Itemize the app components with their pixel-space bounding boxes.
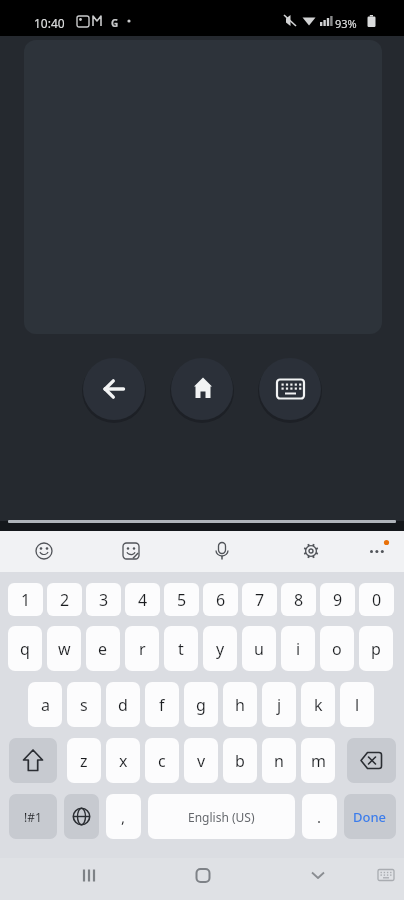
button[interactable]	[73, 860, 105, 892]
button[interactable]: English (US)	[148, 794, 295, 839]
button[interactable]	[347, 738, 396, 783]
staticText: 8	[294, 589, 304, 611]
button[interactable]	[293, 533, 329, 569]
staticText: v	[197, 750, 206, 772]
staticText: z	[80, 750, 88, 772]
button[interactable]: r	[125, 626, 159, 671]
staticText: 0	[372, 589, 382, 611]
button[interactable]: z	[67, 738, 101, 783]
button[interactable]: w	[47, 626, 81, 671]
button[interactable]: b	[223, 738, 257, 783]
button[interactable]	[83, 358, 145, 420]
button[interactable]: 2	[47, 583, 82, 616]
staticText: 3	[99, 589, 109, 611]
staticText: w	[58, 638, 71, 660]
staticText: b	[235, 750, 245, 772]
staticText: 9	[333, 589, 343, 611]
staticText: g	[196, 694, 206, 716]
button[interactable]	[26, 533, 62, 569]
button[interactable]: t	[164, 626, 198, 671]
staticText: 93%	[335, 16, 357, 31]
staticText: e	[98, 638, 108, 660]
button[interactable]: 3	[86, 583, 121, 616]
button[interactable]: c	[145, 738, 179, 783]
staticText: 10:40	[34, 15, 65, 31]
button[interactable]: x	[106, 738, 140, 783]
button[interactable]: l	[340, 682, 374, 727]
button[interactable]: d	[106, 682, 140, 727]
staticText: 7	[255, 589, 265, 611]
button[interactable]	[64, 794, 99, 839]
staticText: G	[111, 16, 119, 30]
button[interactable]: e	[86, 626, 120, 671]
staticText: p	[371, 638, 381, 660]
button[interactable]: y	[203, 626, 237, 671]
button[interactable]: j	[262, 682, 296, 727]
button[interactable]: k	[301, 682, 335, 727]
button[interactable]	[370, 860, 402, 892]
staticText: n	[274, 750, 284, 772]
staticText: h	[235, 694, 245, 716]
button[interactable]: .	[302, 794, 337, 839]
staticText: q	[20, 638, 30, 660]
staticText: j	[277, 694, 282, 716]
staticText: ,	[121, 807, 126, 827]
staticText: l	[355, 694, 360, 716]
staticText: t	[178, 638, 184, 660]
button[interactable]: ,	[106, 794, 141, 839]
staticText: Done	[353, 808, 387, 826]
button[interactable]: a	[28, 682, 62, 727]
button[interactable]: f	[145, 682, 179, 727]
staticText: 4	[138, 589, 148, 611]
staticText: a	[41, 694, 50, 716]
button[interactable]: 8	[281, 583, 316, 616]
button[interactable]	[171, 358, 233, 420]
button[interactable]: 7	[242, 583, 277, 616]
button[interactable]: n	[262, 738, 296, 783]
staticText: d	[118, 694, 128, 716]
staticText: 5	[177, 589, 187, 611]
staticText: !#1	[24, 809, 42, 825]
button[interactable]: s	[67, 682, 101, 727]
button[interactable]	[187, 860, 219, 892]
button[interactable]: p	[359, 626, 393, 671]
button[interactable]: o	[320, 626, 354, 671]
button[interactable]	[259, 358, 321, 420]
button[interactable]: 5	[164, 583, 199, 616]
button[interactable]: m	[301, 738, 335, 783]
button[interactable]	[302, 860, 334, 892]
button[interactable]: q	[8, 626, 42, 671]
button[interactable]	[113, 533, 149, 569]
staticText: 2	[60, 589, 70, 611]
button[interactable]: u	[242, 626, 276, 671]
staticText: 1	[21, 589, 31, 611]
staticText: r	[139, 638, 146, 660]
button[interactable]: g	[184, 682, 218, 727]
staticText: English (US)	[188, 809, 255, 825]
button[interactable]	[9, 738, 57, 783]
staticText: u	[254, 638, 264, 660]
button[interactable]	[359, 533, 395, 569]
button[interactable]: !#1	[9, 794, 57, 839]
button[interactable]: i	[281, 626, 315, 671]
button[interactable]: v	[184, 738, 218, 783]
button[interactable]: 1	[8, 583, 43, 616]
staticText: o	[332, 638, 342, 660]
staticText: c	[158, 750, 166, 772]
button[interactable]: 9	[320, 583, 355, 616]
staticText: x	[119, 750, 128, 772]
button[interactable]	[204, 533, 240, 569]
button[interactable]: 0	[359, 583, 394, 616]
staticText: y	[216, 638, 225, 660]
button[interactable]: Done	[344, 794, 396, 839]
staticText: f	[159, 694, 165, 716]
button[interactable]: 6	[203, 583, 238, 616]
staticText: s	[80, 694, 88, 716]
staticText: i	[296, 638, 301, 660]
staticText: 6	[216, 589, 226, 611]
button[interactable]: h	[223, 682, 257, 727]
button[interactable]: 4	[125, 583, 160, 616]
staticText: .	[317, 807, 322, 827]
staticText: k	[314, 694, 323, 716]
